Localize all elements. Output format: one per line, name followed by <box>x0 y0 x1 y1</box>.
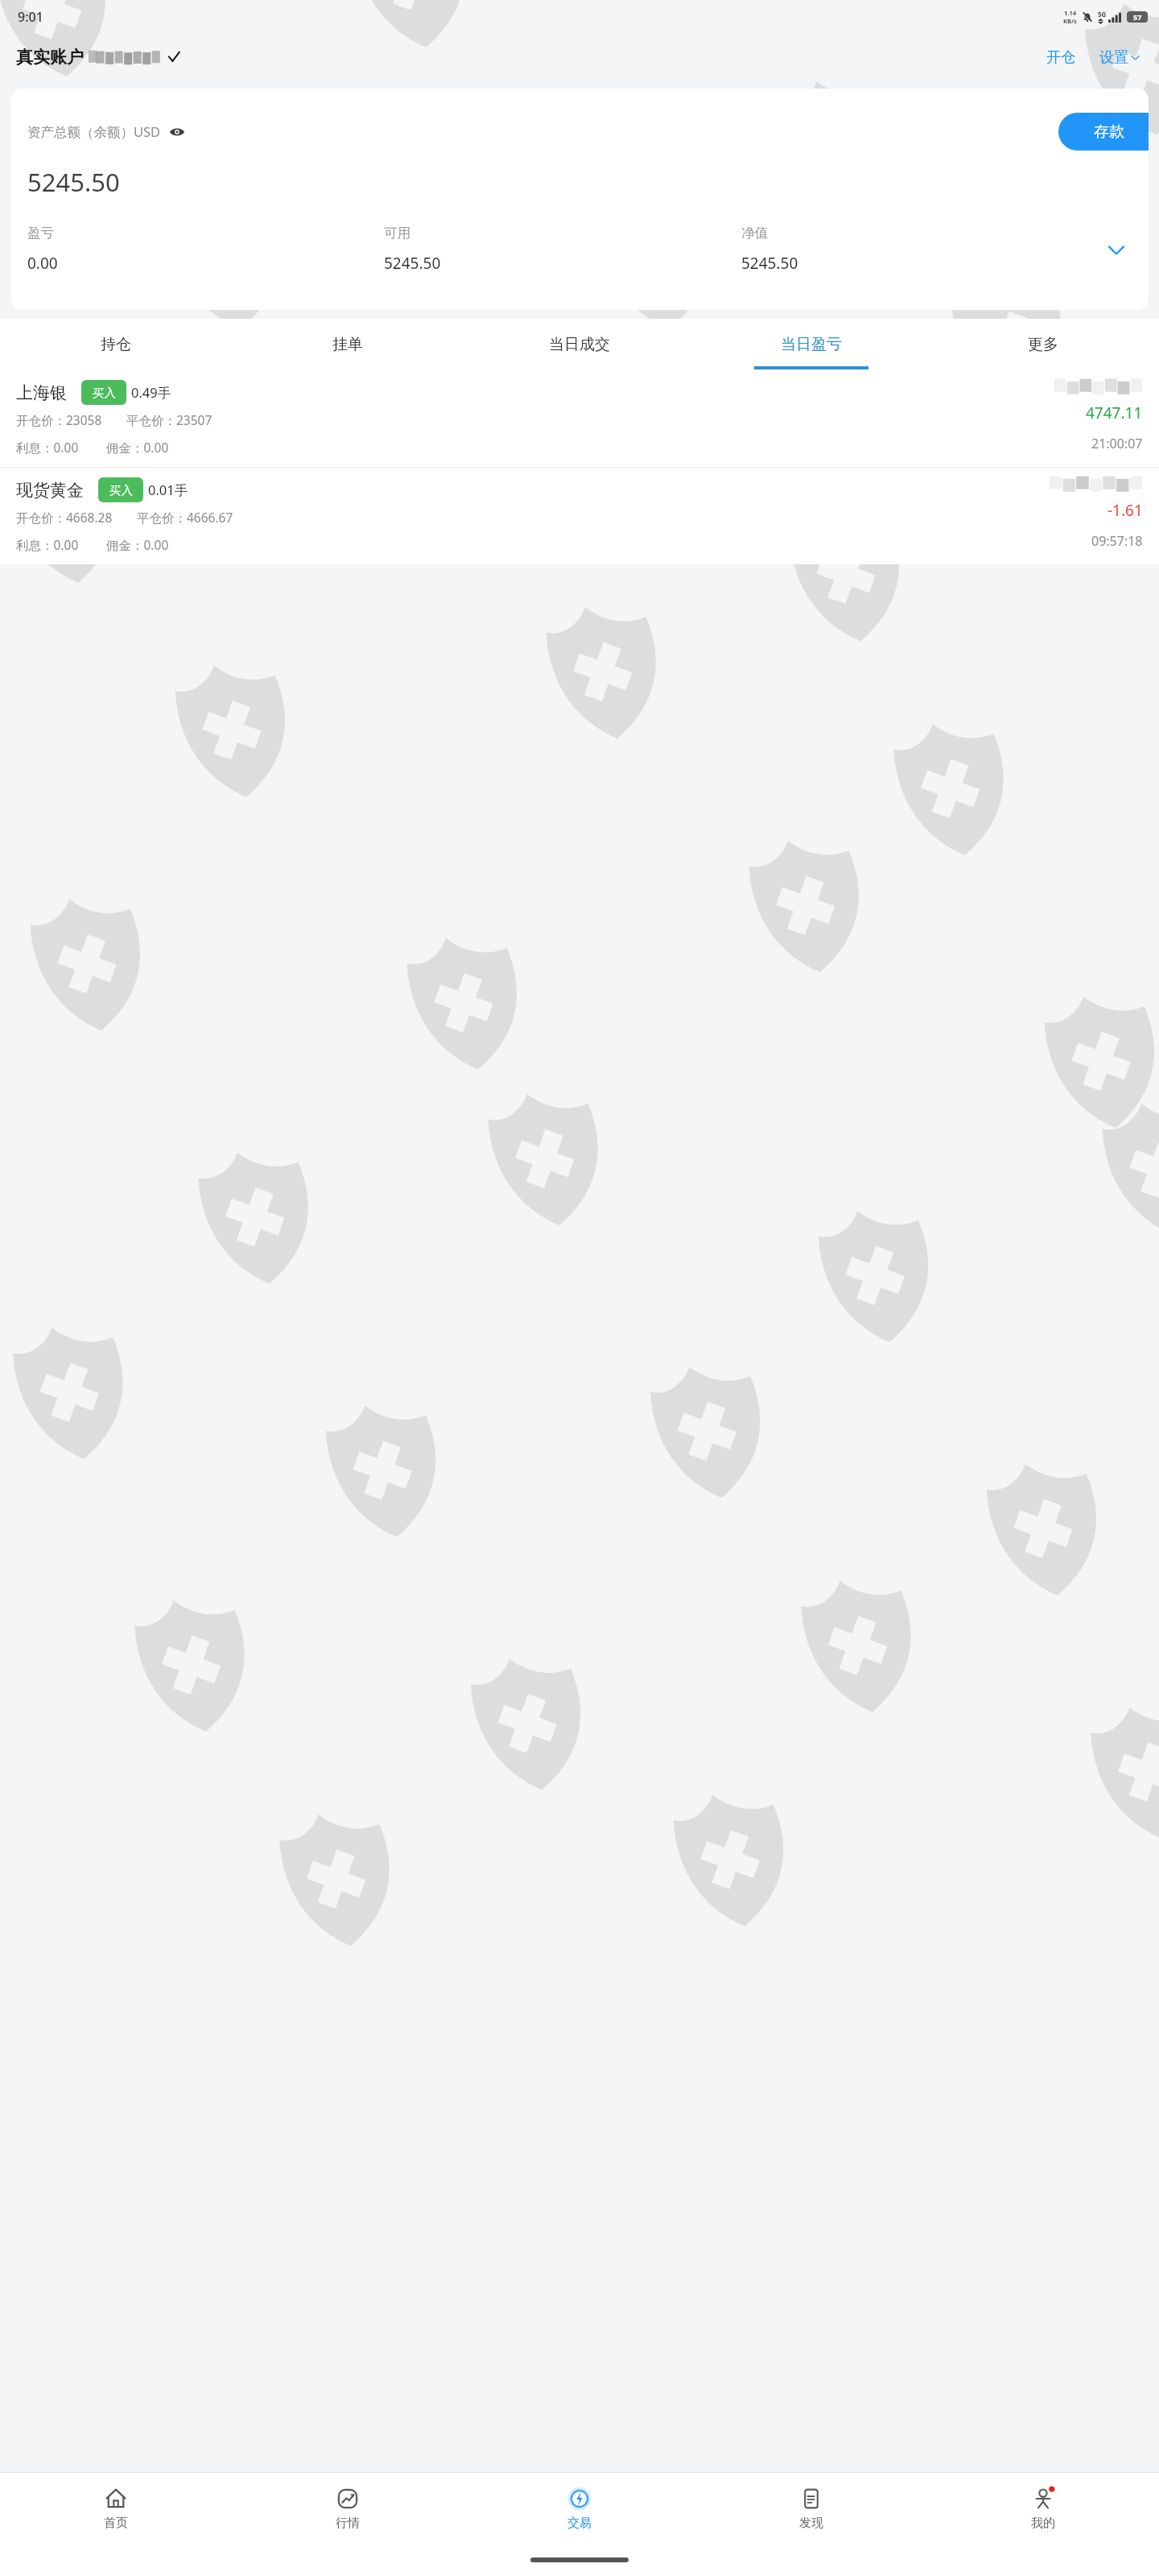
button[interactable]: 现货黄金 <box>0 468 1159 564</box>
staticText: 净值 <box>741 225 768 242</box>
staticText: 佣金：0.00 <box>106 536 169 553</box>
staticText: 当日成交 <box>549 335 610 354</box>
button[interactable]: 挂单 <box>232 319 464 370</box>
button[interactable]: 发现 <box>695 2473 927 2544</box>
staticText: 当日盈亏 <box>781 335 842 354</box>
staticText: 5G <box>1098 10 1107 19</box>
staticText: 上海银 <box>16 382 67 403</box>
staticText: 0.49手 <box>131 383 171 402</box>
button[interactable]: 当日盈亏 <box>695 319 927 370</box>
button[interactable]: 存款 <box>1058 113 1149 151</box>
staticText: 5245.50 <box>384 253 441 274</box>
button[interactable]: 行情 <box>232 2473 464 2544</box>
staticText: 真实账户 <box>16 47 84 68</box>
staticText: 0.00 <box>27 253 58 274</box>
staticText: 佣金：0.00 <box>106 439 169 456</box>
staticText: 1.14 <box>1064 9 1076 17</box>
staticText: 开仓价：23058 <box>16 411 102 428</box>
staticText: 现货黄金 <box>16 480 84 501</box>
staticText: 57 <box>1133 12 1142 22</box>
button[interactable]: 上海银 <box>0 370 1159 467</box>
staticText: 5245.50 <box>27 165 120 199</box>
staticText: 平仓价：23507 <box>126 411 212 428</box>
button[interactable]: 当日成交 <box>464 319 695 370</box>
button[interactable]: 开仓 <box>1040 43 1082 72</box>
button[interactable]: 设置 <box>1095 43 1145 72</box>
staticText: 我的 <box>1031 2516 1055 2531</box>
staticText: 利息：0.00 <box>16 536 79 553</box>
staticText: -1.61 <box>1107 500 1143 521</box>
staticText: 21:00:07 <box>1091 435 1143 452</box>
button[interactable]: 我的 <box>927 2473 1159 2544</box>
staticText: 设置 <box>1099 48 1128 67</box>
button[interactable]: 真实账户 <box>16 47 180 68</box>
staticText: 行情 <box>336 2516 360 2531</box>
staticText: 存款 <box>1094 122 1124 142</box>
staticText: KB/s <box>1063 17 1077 25</box>
staticText: 开仓价：4668.28 <box>16 509 113 526</box>
button[interactable]: 交易 <box>464 2473 695 2544</box>
button[interactable]: 持仓 <box>0 319 232 370</box>
staticText: 可用 <box>384 225 410 242</box>
staticText: 买入 <box>93 386 116 400</box>
staticText: 交易 <box>567 2516 592 2531</box>
staticText: 平仓价：4666.67 <box>137 509 233 526</box>
staticText: 4747.11 <box>1086 402 1143 423</box>
staticText: 资产总额（余额）USD <box>27 122 161 141</box>
staticText: 利息：0.00 <box>16 439 79 456</box>
button[interactable]: 首页 <box>0 2473 232 2544</box>
staticText: 5245.50 <box>741 253 798 274</box>
button[interactable]: Expand account details <box>1099 232 1134 267</box>
staticText: 持仓 <box>101 335 131 354</box>
staticText: 发现 <box>799 2516 823 2531</box>
staticText: 0.01手 <box>148 481 188 499</box>
staticText: 首页 <box>104 2516 128 2531</box>
staticText: 买入 <box>109 483 133 497</box>
staticText: 更多 <box>1028 335 1058 354</box>
button[interactable]: 更多 <box>927 319 1159 370</box>
staticText: 开仓 <box>1046 48 1075 67</box>
staticText: 09:57:18 <box>1091 532 1143 550</box>
staticText: 9:01 <box>18 8 43 26</box>
staticText: 盈亏 <box>27 225 54 242</box>
button[interactable]: Toggle balance visibility <box>168 123 186 141</box>
staticText: 挂单 <box>332 335 363 354</box>
